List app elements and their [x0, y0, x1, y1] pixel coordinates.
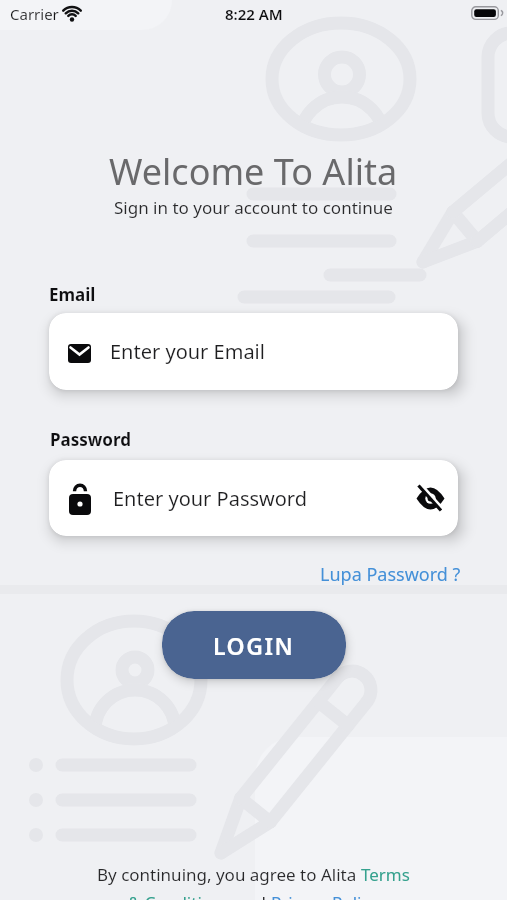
staticText: Enter your Password — [113, 485, 308, 512]
staticText: Password — [50, 428, 131, 451]
button[interactable] — [402, 470, 458, 526]
button[interactable]: Enter your Email — [49, 313, 458, 390]
button[interactable]: & Conditions — [128, 891, 231, 900]
staticText: LOGIN — [213, 630, 295, 661]
button[interactable]: Terms — [361, 863, 410, 886]
staticText: Email — [49, 283, 96, 306]
staticText: 8:22 AM — [225, 4, 283, 24]
staticText: Welcome To Alita — [109, 147, 398, 196]
button[interactable]: Lupa Password ? — [312, 554, 469, 595]
staticText: Carrier — [10, 4, 59, 24]
button[interactable]: LOGIN — [162, 611, 346, 679]
staticText: Sign in to your account to continue — [114, 196, 393, 219]
button[interactable]: Enter your Password — [49, 460, 458, 536]
staticText: Lupa Password ? — [320, 562, 461, 587]
button[interactable]: Privacy Policy — [271, 891, 379, 900]
staticText: and — [231, 891, 271, 900]
staticText: Enter your Email — [110, 338, 265, 365]
staticText: By continuing, you agree to Alita — [97, 863, 361, 886]
